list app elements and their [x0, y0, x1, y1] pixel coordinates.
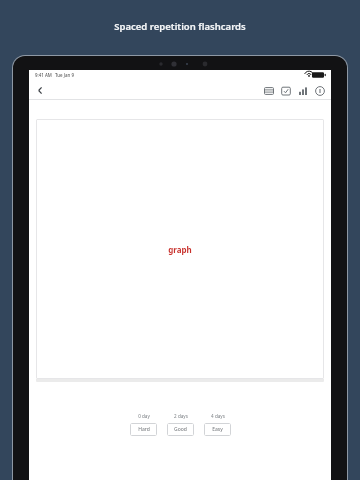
staticText: 4 days — [211, 413, 225, 419]
staticText: Good — [174, 426, 187, 433]
staticText: 0 day — [138, 413, 150, 419]
staticText: 9:41 AM — [35, 72, 52, 78]
button[interactable]: Statistics — [294, 82, 311, 99]
button[interactable]: graph — [36, 119, 324, 379]
button[interactable]: Card browser — [260, 82, 277, 99]
staticText: graph — [168, 244, 192, 255]
staticText: Easy — [212, 426, 223, 433]
staticText: Tue Jan 9 — [55, 72, 74, 78]
button[interactable]: Good — [167, 423, 194, 436]
staticText: Hard — [138, 426, 150, 433]
button[interactable]: Hard — [130, 423, 157, 436]
staticText: Spaced repetition flashcards — [114, 20, 246, 33]
button[interactable]: Due date — [277, 82, 294, 99]
button[interactable]: Easy — [204, 423, 231, 436]
staticText: 2 days — [174, 413, 188, 419]
button[interactable]: Back — [32, 82, 48, 98]
button[interactable]: Card info — [311, 82, 328, 99]
